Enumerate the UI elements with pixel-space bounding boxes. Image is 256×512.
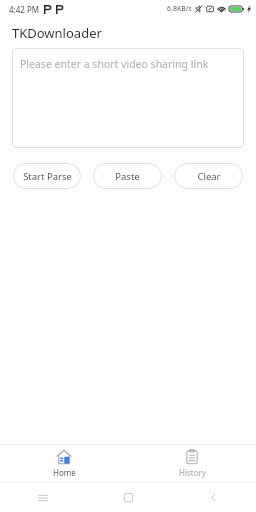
button[interactable]: Start Parse — [13, 163, 81, 189]
staticText: Clear — [197, 170, 221, 183]
button[interactable]: History — [128, 445, 256, 482]
button[interactable]: Recent apps — [0, 483, 86, 512]
button[interactable]: Clear — [174, 163, 243, 189]
staticText: Start Parse — [23, 170, 72, 183]
staticText: Please enter a short video sharing link — [20, 57, 209, 71]
button[interactable]: Home — [0, 445, 128, 482]
button[interactable]: Home — [86, 483, 171, 512]
button[interactable]: Please enter a short video sharing link — [12, 48, 244, 148]
staticText: Home — [53, 467, 76, 478]
staticText: 4:42 PM — [9, 4, 40, 15]
staticText: 6.8KB/s — [167, 4, 192, 14]
staticText: History — [179, 467, 206, 478]
staticText: Paste — [115, 170, 140, 183]
button[interactable]: Paste — [93, 163, 162, 189]
staticText: TKDownloader — [12, 24, 102, 42]
